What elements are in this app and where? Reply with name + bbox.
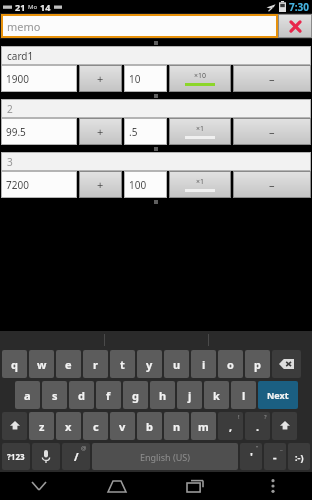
staticText: k <box>213 388 220 403</box>
button[interactable]: k <box>204 381 229 409</box>
button[interactable]: @ <box>62 443 90 470</box>
button[interactable]: 1900 <box>1 65 77 92</box>
staticText: ' <box>250 449 253 464</box>
staticText: z <box>39 419 45 434</box>
staticText: 100 <box>129 178 147 192</box>
button[interactable]: 7200 <box>1 171 77 198</box>
button[interactable]: l <box>231 381 256 409</box>
staticText: b <box>146 419 153 434</box>
button[interactable]: Clear memo <box>278 14 312 38</box>
staticText: English (US) <box>140 451 190 463</box>
button[interactable]: 2 <box>1 99 311 118</box>
staticText: + <box>97 124 104 139</box>
button[interactable]: u <box>164 350 189 378</box>
staticText: j <box>188 388 192 403</box>
button[interactable]: 3 <box>1 152 311 171</box>
button[interactable]: x <box>56 412 81 440</box>
staticText: 14 <box>40 1 51 13</box>
staticText: + <box>97 71 104 86</box>
button[interactable]: i <box>191 350 216 378</box>
button[interactable]: j <box>177 381 202 409</box>
button[interactable]: :-) <box>288 443 310 470</box>
button[interactable]: card1 <box>1 46 311 65</box>
staticText: 21 <box>15 1 26 13</box>
button[interactable]: Next <box>258 381 298 409</box>
button[interactable]: m <box>191 412 216 440</box>
button[interactable]: Backspace <box>272 350 301 378</box>
button[interactable]: + <box>79 171 122 198</box>
button[interactable]: 10 <box>124 65 167 92</box>
staticText: 10 <box>129 72 141 86</box>
button[interactable]: .5 <box>124 118 167 145</box>
staticText: – <box>269 124 275 139</box>
button[interactable]: e <box>56 350 81 378</box>
button[interactable]: + <box>79 118 122 145</box>
button[interactable]: ? <box>245 412 270 440</box>
staticText: – <box>269 177 275 192</box>
button[interactable]: z <box>29 412 54 440</box>
button[interactable]: ! <box>218 412 243 440</box>
staticText: _ <box>280 444 283 452</box>
button[interactable]: r <box>83 350 108 378</box>
button[interactable]: v <box>110 412 135 440</box>
button[interactable]: ?123 <box>2 443 30 470</box>
button[interactable]: g <box>123 381 148 409</box>
button[interactable]: o <box>218 350 243 378</box>
staticText: ×10 <box>194 71 207 81</box>
staticText: u <box>173 357 181 372</box>
staticText: e <box>65 357 72 372</box>
button[interactable]: memo <box>1 14 278 38</box>
button[interactable]: h <box>150 381 175 409</box>
button[interactable]: More options <box>234 472 312 500</box>
staticText: c <box>93 419 99 434</box>
button[interactable]: w <box>29 350 54 378</box>
staticText: Mo <box>28 3 38 11</box>
button[interactable]: t <box>110 350 135 378</box>
staticText: . <box>256 419 260 434</box>
button[interactable]: Home <box>78 472 156 500</box>
staticText: + <box>97 177 104 192</box>
button[interactable]: 100 <box>124 171 167 198</box>
button[interactable]: a <box>15 381 40 409</box>
button[interactable]: Shift <box>2 412 27 440</box>
staticText: v <box>119 419 126 434</box>
button[interactable]: ×10 <box>169 65 231 92</box>
button[interactable]: " <box>240 443 262 470</box>
button[interactable]: – <box>233 171 311 198</box>
button[interactable]: n <box>164 412 189 440</box>
other: Airplane mode <box>266 2 276 12</box>
button[interactable]: q <box>2 350 27 378</box>
button[interactable]: Shift <box>272 412 297 440</box>
button[interactable]: ×1 <box>169 118 231 145</box>
button[interactable]: – <box>233 118 311 145</box>
button[interactable]: + <box>79 65 122 92</box>
staticText: - <box>273 449 277 464</box>
button[interactable]: – <box>233 65 311 92</box>
button[interactable]: c <box>83 412 108 440</box>
button[interactable]: y <box>137 350 162 378</box>
other: Battery <box>279 1 286 12</box>
button[interactable]: d <box>69 381 94 409</box>
staticText: i <box>202 357 206 372</box>
staticText: , <box>229 419 233 434</box>
button[interactable]: Hide keyboard <box>0 472 78 500</box>
button[interactable]: English (US) <box>92 443 238 470</box>
button[interactable]: _ <box>264 443 286 470</box>
button[interactable]: Recent apps <box>156 472 234 500</box>
staticText: ! <box>238 413 240 421</box>
button[interactable]: p <box>245 350 270 378</box>
staticText: h <box>159 388 167 403</box>
button[interactable]: f <box>96 381 121 409</box>
staticText: l <box>242 388 246 403</box>
button[interactable]: Voice input <box>32 443 60 470</box>
button[interactable]: b <box>137 412 162 440</box>
button[interactable]: ×1 <box>169 171 231 198</box>
staticText: o <box>227 357 234 372</box>
button[interactable]: 99.5 <box>1 118 77 145</box>
staticText: g <box>132 388 139 403</box>
button[interactable]: s <box>42 381 67 409</box>
staticText: 7:30 <box>289 0 309 13</box>
